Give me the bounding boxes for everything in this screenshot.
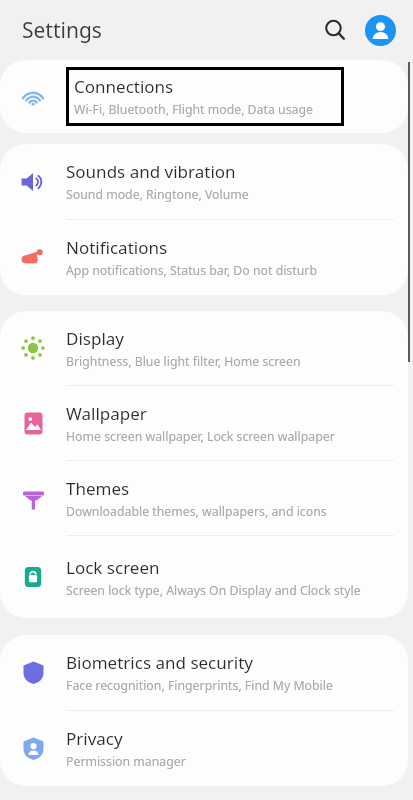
button[interactable]: Sounds and vibration <box>0 144 408 219</box>
staticText: Permission manager <box>66 753 186 770</box>
staticText: Themes <box>66 477 130 500</box>
staticText: Downloadable themes, wallpapers, and ico… <box>66 503 327 520</box>
staticText: Face recognition, Fingerprints, Find My … <box>66 677 333 694</box>
staticText: Brightness, Blue light filter, Home scre… <box>66 353 301 370</box>
button[interactable]: Search <box>313 8 357 52</box>
button[interactable]: Display <box>0 311 408 385</box>
staticText: Notifications <box>66 236 168 259</box>
staticText: App notifications, Status bar, Do not di… <box>66 262 317 279</box>
button[interactable]: Connections <box>0 60 408 133</box>
staticText: Sound mode, Ringtone, Volume <box>66 186 249 203</box>
button[interactable]: Lock screen <box>0 536 408 618</box>
staticText: Connections <box>74 75 174 98</box>
staticText: Lock screen <box>66 556 160 579</box>
button[interactable]: Biometrics and security <box>0 635 408 710</box>
staticText: Screen lock type, Always On Display and … <box>66 582 361 599</box>
staticText: Settings <box>22 16 102 45</box>
button[interactable]: Account <box>359 9 401 51</box>
staticText: Privacy <box>66 727 123 750</box>
button[interactable]: Privacy <box>0 711 408 786</box>
staticText: Wi-Fi, Bluetooth, Flight mode, Data usag… <box>74 101 313 118</box>
staticText: Sounds and vibration <box>66 160 236 183</box>
staticText: Display <box>66 327 124 350</box>
staticText: Wallpaper <box>66 402 147 425</box>
staticText: Home screen wallpaper, Lock screen wallp… <box>66 428 335 445</box>
button[interactable]: Themes <box>0 461 408 535</box>
staticText: Biometrics and security <box>66 651 253 674</box>
button[interactable]: Wallpaper <box>0 386 408 460</box>
button[interactable]: Notifications <box>0 220 408 295</box>
